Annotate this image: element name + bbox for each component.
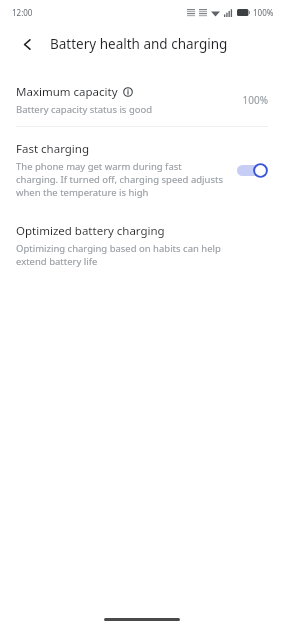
- staticText: Optimized battery charging: [16, 223, 165, 239]
- staticText: Fast charging: [16, 141, 90, 157]
- staticText: Optimizing charging based on habits can …: [16, 242, 238, 268]
- staticText: 100%: [253, 7, 274, 18]
- staticText: 12:00: [12, 7, 33, 18]
- button[interactable]: Maximum capacity: [0, 76, 284, 126]
- button[interactable]: Back: [14, 31, 40, 57]
- staticText: The phone may get warm during fast charg…: [16, 160, 224, 199]
- staticText: Maximum capacity: [16, 84, 118, 100]
- button[interactable]: Fast charging: [0, 127, 284, 209]
- button[interactable]: Fast charging toggle: [236, 161, 268, 179]
- staticText: Battery health and charging: [50, 35, 228, 53]
- staticText: 100%: [242, 93, 268, 107]
- button[interactable]: Optimized battery charging: [0, 209, 284, 278]
- staticText: Battery capacity status is good: [16, 103, 153, 116]
